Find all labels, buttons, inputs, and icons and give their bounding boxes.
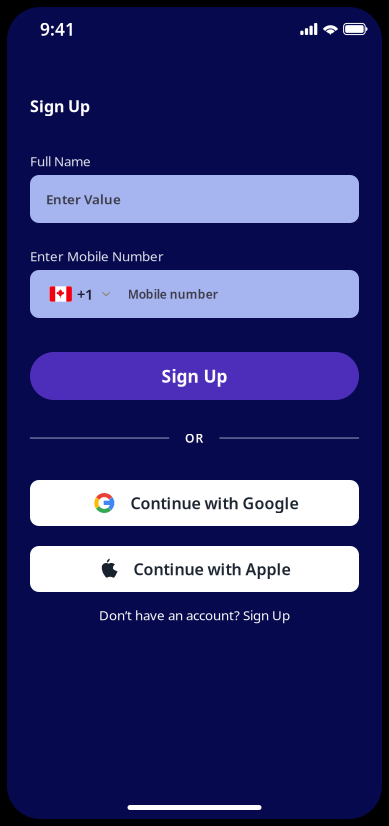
staticText: Enter Value	[46, 190, 121, 208]
staticText: Don’t have an account? Sign Up	[99, 606, 290, 624]
staticText: Full Name	[30, 152, 91, 170]
staticText: Enter Mobile Number	[30, 247, 164, 265]
staticText: Continue with Google	[130, 492, 298, 514]
button[interactable]: Sign Up	[30, 352, 359, 400]
button[interactable]: Enter Value	[30, 175, 359, 223]
button[interactable]: Don’t have an account? Sign Up	[30, 608, 359, 622]
button[interactable]: +1	[30, 270, 359, 318]
staticText: Sign Up	[30, 95, 90, 117]
staticText: 9:41	[40, 17, 75, 40]
staticText: OR	[185, 430, 204, 446]
button[interactable]: Continue with Apple	[30, 546, 359, 592]
button[interactable]: Continue with Google	[30, 480, 359, 526]
staticText: Sign Up	[161, 364, 227, 387]
staticText: Mobile number	[128, 286, 218, 302]
staticText: Continue with Apple	[134, 558, 291, 580]
staticText: +1	[77, 284, 93, 304]
